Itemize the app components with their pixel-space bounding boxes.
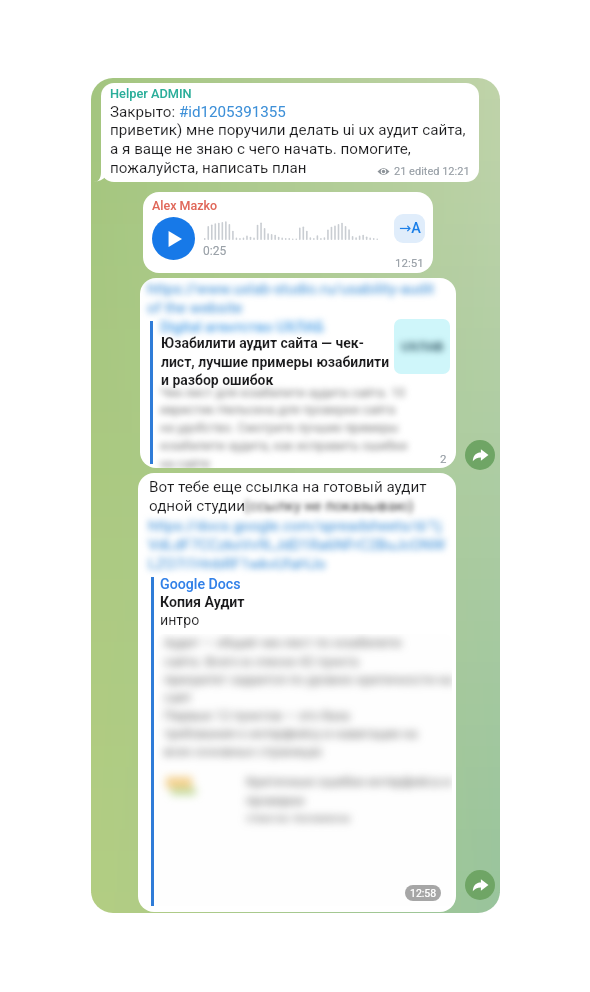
staticText: UXЛАБ [401, 339, 444, 354]
staticText: интро [160, 612, 200, 629]
button[interactable]: https://www.uxlab-studio.ru/usability-au… [140, 278, 456, 468]
staticText: 21 edited 12:21 [394, 165, 470, 178]
staticText: 0:25 [203, 244, 227, 258]
staticText: Helper ADMIN [110, 86, 192, 101]
staticText: Копия Аудит [160, 594, 245, 611]
staticText: 12:51 [395, 256, 424, 269]
staticText: приветик) мне поручили делать ui ux ауди… [110, 121, 470, 177]
staticText: (ссылку не показываю) [244, 497, 414, 515]
staticText: Digital агентство UXЛАБ [160, 319, 325, 336]
staticText: Чек-лист для юзабилити аудита сайта. 10 … [160, 385, 410, 468]
staticText: Закрыто: #id1205391355 [110, 103, 286, 121]
staticText: Юзабилити аудит сайта — чек-лист, лучшие… [161, 335, 393, 388]
staticText: https://docs.google.com/spreadsheets/d/1… [148, 517, 448, 573]
button[interactable]: Alex Mazko [143, 192, 433, 273]
button[interactable]: Play voice message [152, 217, 195, 260]
button[interactable]: Вот тебе еще ссылка на готовый аудит одн… [138, 473, 456, 912]
button[interactable]: Helper ADMIN [101, 83, 479, 182]
button[interactable]: Transcribe to text [394, 214, 425, 243]
staticText: Критичные ошибки интерфейса и проверки с… [246, 774, 452, 822]
staticText: Аудит — общий чек-лист по юзабилити сайт… [164, 635, 452, 759]
staticText: Google Docs [160, 576, 241, 593]
button[interactable]: Forward [465, 440, 495, 470]
staticText: 2 [440, 452, 447, 465]
staticText: Alex Mazko [152, 198, 218, 213]
button[interactable]: Forward [465, 870, 495, 900]
staticText: Вот тебе еще ссылка на готовый аудит одн… [149, 478, 447, 515]
staticText: 12:58 [410, 887, 437, 899]
staticText: →A [399, 220, 421, 237]
staticText: https://www.uxlab-studio.ru/usability-au… [147, 280, 449, 317]
